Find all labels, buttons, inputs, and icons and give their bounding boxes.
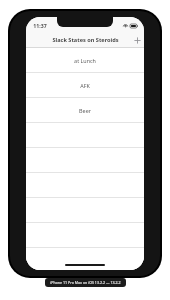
staticText: 11:37 [33,22,47,29]
button[interactable]: at Lunch [26,48,144,72]
staticText: Beer [79,107,91,114]
button[interactable]: AFK [26,73,144,97]
staticText: AFK [80,82,90,89]
button[interactable]: Beer [26,98,144,122]
staticText: Slack States on Steroids [52,36,119,44]
staticText: at Lunch [74,57,96,64]
button[interactable]: Add state [130,33,144,47]
staticText: iPhone 11 Pro Max on iOS 13.2.2 — 13.2.2 [50,280,121,285]
